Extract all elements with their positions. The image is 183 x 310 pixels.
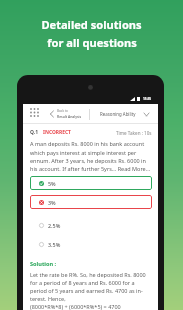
staticText: INCORRECT xyxy=(43,129,71,136)
button[interactable]: All questions xyxy=(27,106,42,119)
staticText: 15:35 xyxy=(143,97,152,101)
staticText: Time Taken : 10s xyxy=(116,130,152,136)
button[interactable]: 5% xyxy=(30,176,152,190)
staticText: Let the rate be R%. So, he deposited Rs.… xyxy=(30,271,146,310)
button[interactable]: Reasoning Ability xyxy=(100,107,149,121)
staticText: 3% xyxy=(48,199,56,206)
button[interactable]: 3% xyxy=(30,195,152,209)
staticText: Reasoning Ability xyxy=(100,111,136,117)
staticText: Solution : xyxy=(30,260,57,268)
staticText: 2.5% xyxy=(48,222,61,229)
staticText: 5% xyxy=(48,180,56,187)
staticText: Back to xyxy=(57,109,68,113)
staticText: for all questions xyxy=(47,35,137,50)
staticText: Detailed solutions xyxy=(41,17,142,32)
staticText: A man deposits Rs. 8000 in his bank acco… xyxy=(30,140,151,172)
staticText: Q.1 xyxy=(30,129,39,136)
button[interactable]: Back to xyxy=(50,107,82,121)
staticText: 3.5% xyxy=(48,241,61,248)
button[interactable]: 2.5% xyxy=(30,218,152,232)
button[interactable]: 3.5% xyxy=(30,237,152,251)
staticText: Result Analysis xyxy=(57,114,82,119)
